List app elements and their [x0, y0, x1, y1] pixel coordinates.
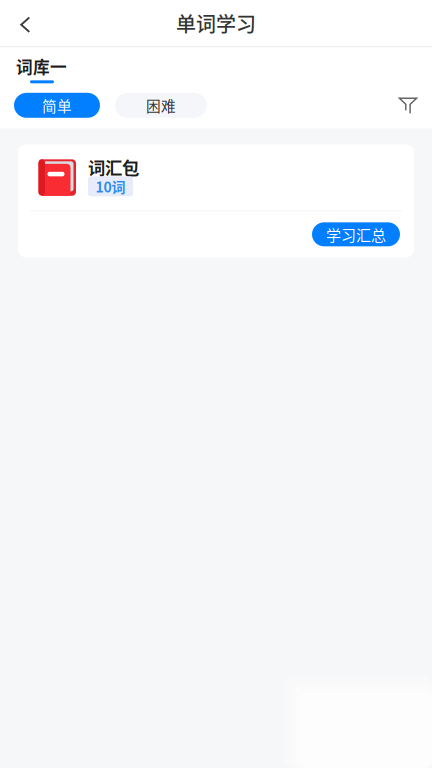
staticText: 单词学习 [176, 8, 256, 37]
staticText: 词汇包 [88, 154, 139, 179]
button[interactable]: 困难 [115, 93, 207, 118]
staticText: 词库一 [16, 54, 67, 78]
staticText: 困难 [146, 95, 176, 116]
staticText: 10词 [95, 176, 125, 196]
staticText: 简单 [42, 95, 72, 116]
button[interactable]: 学习汇总 [312, 222, 400, 246]
button[interactable]: 简单 [14, 93, 100, 118]
button[interactable]: Filter [392, 92, 424, 118]
staticText: 学习汇总 [326, 223, 386, 245]
button[interactable]: Back [0, 0, 46, 46]
